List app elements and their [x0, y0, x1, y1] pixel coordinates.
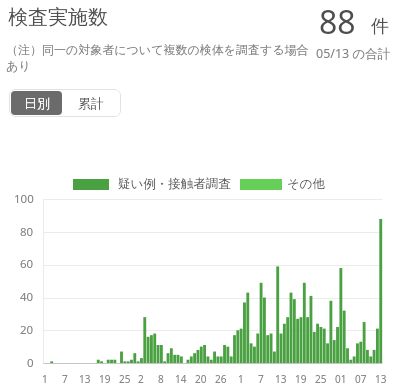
staticText: 13	[79, 372, 91, 386]
staticText: 0	[27, 355, 34, 371]
staticText: 19	[295, 372, 307, 386]
staticText: 1	[42, 372, 48, 386]
staticText: 7	[62, 372, 68, 386]
button[interactable]: 累計	[62, 91, 119, 115]
staticText: 20	[20, 322, 34, 338]
staticText: 検査実施数	[8, 5, 108, 30]
staticText: 14	[175, 372, 187, 386]
button[interactable]: 日別	[11, 91, 62, 115]
staticText: 8	[158, 372, 164, 386]
staticText: 80	[20, 224, 34, 240]
staticText: 件	[371, 15, 389, 38]
staticText: 88	[319, 0, 356, 44]
staticText: 100	[14, 191, 34, 207]
staticText: 累計	[78, 95, 104, 111]
staticText: 25	[119, 372, 131, 386]
staticText: 40	[20, 289, 34, 305]
staticText: 26	[215, 372, 227, 386]
staticText: 19	[99, 372, 111, 386]
staticText: 2	[138, 372, 144, 386]
staticText: 1	[238, 372, 244, 386]
staticText: 7	[258, 372, 264, 386]
staticText: 13	[375, 372, 387, 386]
staticText: 60	[20, 256, 34, 272]
staticText: その他	[287, 176, 326, 192]
staticText: （注）同一の対象者について複数の検体を調査する場合 あり	[6, 42, 309, 74]
staticText: 疑い例・接触者調査	[118, 176, 231, 192]
staticText: 25	[315, 372, 327, 386]
staticText: 07	[355, 372, 367, 386]
staticText: 20	[195, 372, 207, 386]
staticText: 日別	[24, 95, 50, 111]
staticText: 13	[275, 372, 287, 386]
staticText: 05/13 の合計	[316, 45, 391, 62]
staticText: 01	[335, 372, 347, 386]
